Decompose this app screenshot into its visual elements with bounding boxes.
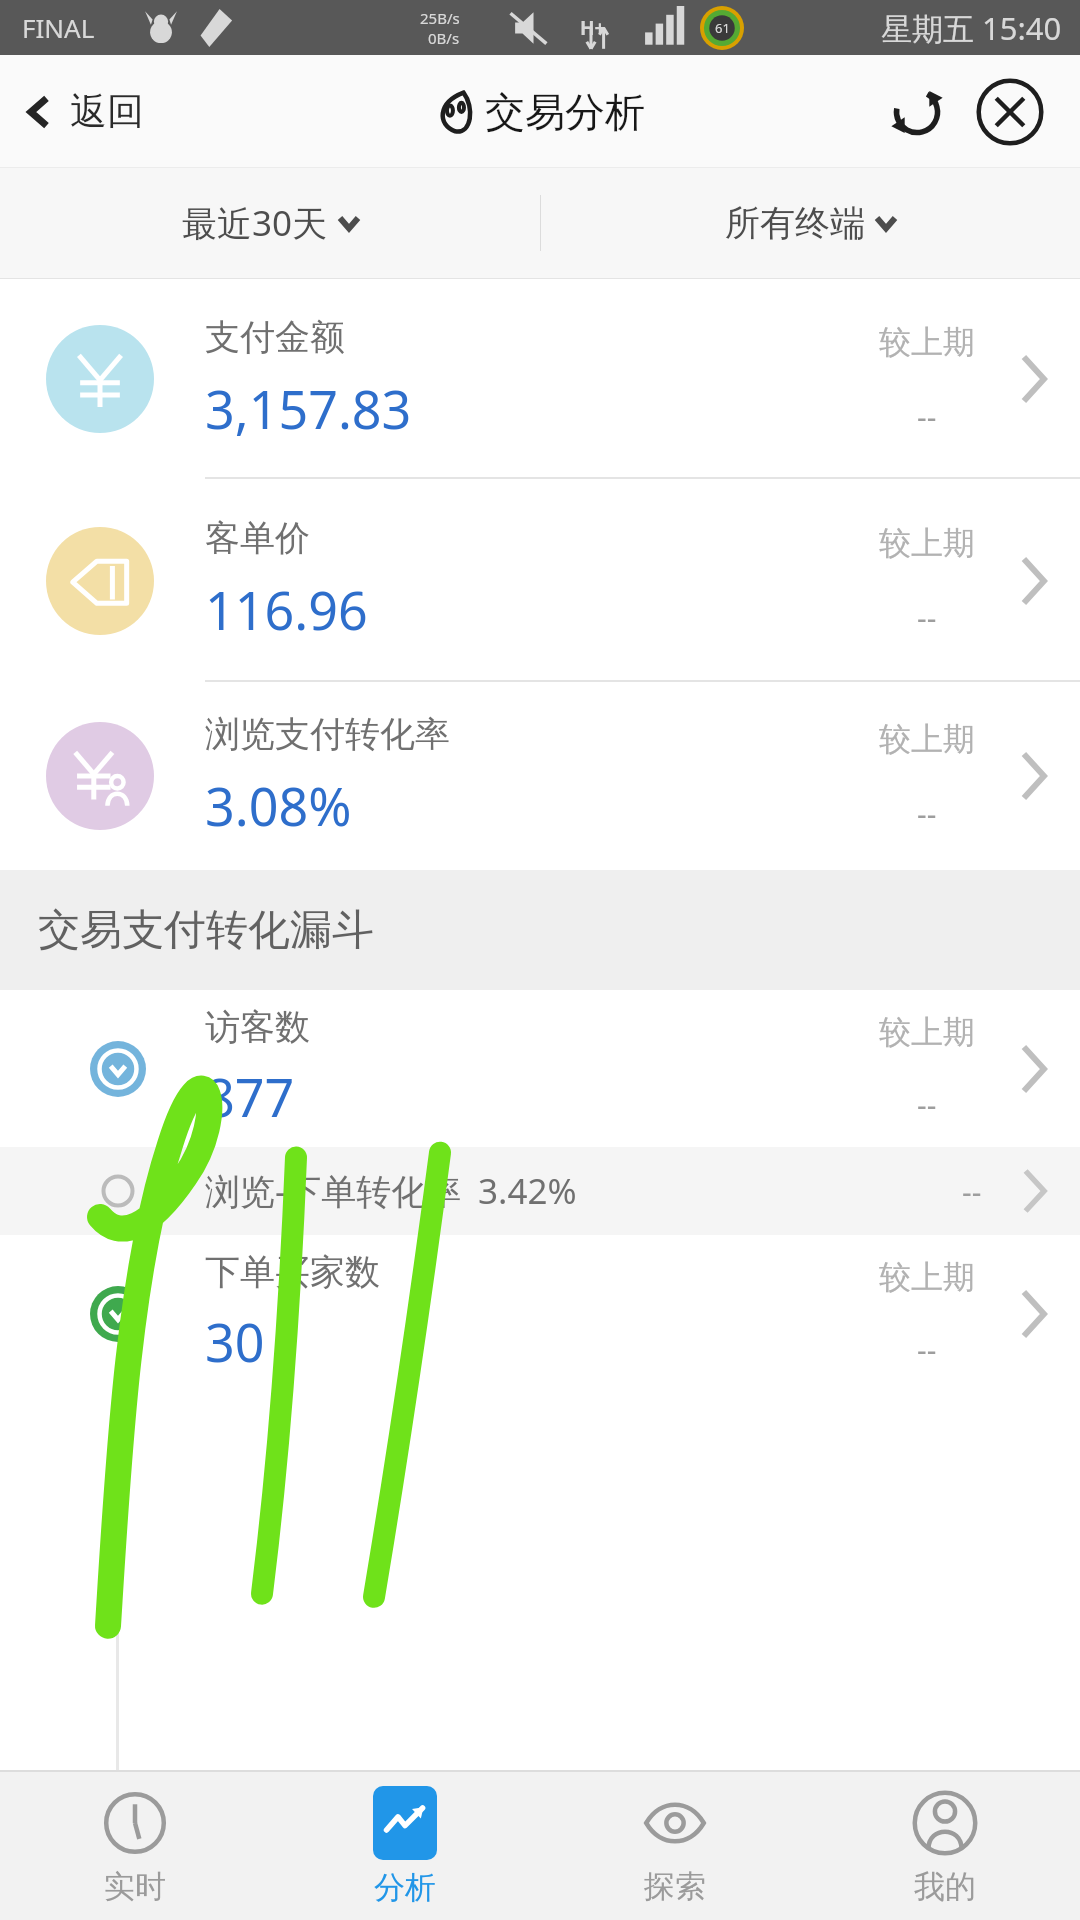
staticText: 交易支付转化漏斗 xyxy=(38,904,374,957)
button[interactable]: 下单买家数 xyxy=(0,1235,1080,1392)
staticText: 0B/s xyxy=(428,28,460,48)
staticText: 较上期 xyxy=(879,719,975,759)
staticText: 25B/s xyxy=(420,8,460,28)
staticText: 3,157.83 xyxy=(205,373,412,444)
button[interactable]: 最近30天 xyxy=(0,168,540,278)
staticText: FINAL xyxy=(22,10,95,45)
staticText: 较上期 xyxy=(879,322,975,362)
staticText: 探索 xyxy=(644,1867,706,1906)
button[interactable]: 所有终端 xyxy=(540,168,1080,278)
staticText: -- xyxy=(917,1329,937,1370)
button[interactable]: 浏览-下单转化率 xyxy=(0,1147,1080,1235)
button[interactable]: 访客数 xyxy=(0,990,1080,1147)
staticText: 支付金额 xyxy=(205,315,345,359)
staticText: -- xyxy=(917,597,937,638)
staticText: 实时 xyxy=(104,1867,166,1906)
button[interactable]: 返回 xyxy=(0,55,162,168)
button[interactable]: 支付金额 xyxy=(0,279,1080,479)
button[interactable]: 实时 xyxy=(0,1772,270,1920)
staticText: 我的 xyxy=(914,1867,976,1906)
staticText: 3.42% xyxy=(478,1167,577,1215)
staticText: 星期五 15:40 xyxy=(881,7,1062,49)
staticText: 浏览支付转化率 xyxy=(205,712,450,756)
staticText: 下单买家数 xyxy=(205,1250,380,1294)
staticText: H+ xyxy=(580,15,606,41)
staticText: 较上期 xyxy=(879,1257,975,1297)
staticText: 较上期 xyxy=(879,1012,975,1052)
staticText: -- xyxy=(917,1084,937,1125)
staticText: -- xyxy=(917,396,937,437)
staticText: 访客数 xyxy=(205,1005,310,1049)
button[interactable]: 刷新 xyxy=(880,75,954,149)
staticText: 交易分析 xyxy=(485,87,645,137)
button[interactable]: 分析 xyxy=(270,1772,540,1920)
staticText: 61 xyxy=(715,19,730,37)
staticText: -- xyxy=(962,1171,982,1212)
button[interactable]: 探索 xyxy=(540,1772,810,1920)
staticText: 浏览-下单转化率 xyxy=(205,1167,462,1215)
staticText: 所有终端 xyxy=(725,201,865,245)
staticText: 877 xyxy=(205,1061,295,1132)
staticText: 较上期 xyxy=(879,523,975,563)
staticText: 30 xyxy=(205,1306,265,1377)
staticText: 3.08% xyxy=(205,770,352,841)
button[interactable]: 浏览支付转化率 xyxy=(0,682,1080,870)
staticText: 最近30天 xyxy=(182,199,328,247)
button[interactable]: 客单价 xyxy=(0,479,1080,682)
staticText: 客单价 xyxy=(205,516,310,560)
button[interactable]: 关闭 xyxy=(970,72,1050,152)
staticText: -- xyxy=(917,793,937,834)
staticText: 返回 xyxy=(70,88,144,135)
staticText: 116.96 xyxy=(205,574,368,645)
staticText: 分析 xyxy=(374,1868,436,1907)
button[interactable]: 我的 xyxy=(810,1772,1080,1920)
